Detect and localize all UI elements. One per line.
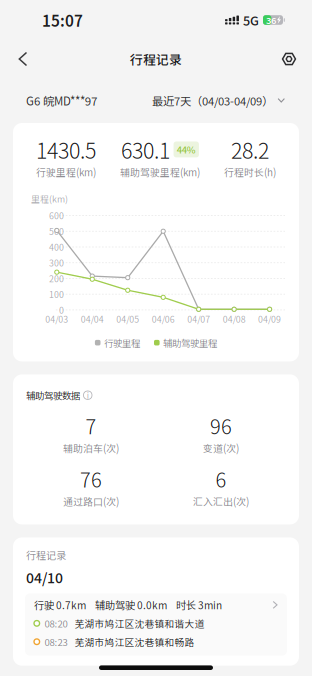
- staticText: 96: [210, 411, 232, 440]
- staticText: 0: [59, 303, 64, 316]
- staticText: G6 皖MD***97: [26, 92, 97, 109]
- staticText: 08:23: [45, 635, 68, 649]
- staticText: 04/07: [187, 312, 210, 325]
- staticText: 辅助驾驶里程(km): [120, 165, 200, 179]
- staticText: 行驶 0.7km: [34, 598, 86, 612]
- staticText: 7: [85, 411, 96, 440]
- staticText: 04/03: [45, 312, 68, 325]
- staticText: 08:20: [45, 616, 68, 630]
- staticText: 15:07: [42, 9, 83, 31]
- staticText: 500: [49, 225, 64, 238]
- button[interactable]: 设置: [270, 40, 308, 78]
- staticText: 芜湖市鸠江区沈巷镇和畅路: [75, 635, 195, 649]
- staticText: 04/10: [26, 567, 63, 587]
- staticText: 辅助驾驶数据: [26, 388, 80, 402]
- button[interactable]: 返回: [4, 40, 42, 78]
- staticText: 6: [215, 464, 226, 493]
- staticText: i: [87, 389, 89, 401]
- staticText: 芜湖市鸠江区沈巷镇和谐大道: [75, 616, 205, 630]
- staticText: 行程记录: [26, 547, 66, 562]
- staticText: 辅助泊车(次): [63, 441, 119, 455]
- staticText: 辅助驾驶 0.0km: [95, 598, 167, 612]
- staticText: 04/06: [152, 312, 175, 325]
- button[interactable]: G6 皖MD***97: [26, 87, 97, 114]
- staticText: 变道(次): [203, 441, 239, 455]
- staticText: 汇入汇出(次): [193, 494, 249, 508]
- staticText: 行驶里程(km): [36, 165, 96, 179]
- staticText: 1430.5: [36, 134, 96, 165]
- staticText: 100: [49, 288, 64, 300]
- staticText: 04/09: [258, 312, 281, 325]
- staticText: 600: [49, 209, 64, 222]
- staticText: 630.1: [121, 134, 170, 165]
- staticText: 300: [49, 256, 64, 269]
- staticText: 76: [80, 464, 102, 493]
- staticText: 28.2: [231, 134, 269, 165]
- staticText: 04/04: [81, 312, 104, 325]
- staticText: 行程时长(h): [224, 165, 276, 179]
- staticText: 36: [266, 13, 276, 27]
- button[interactable]: 行驶 0.7km: [25, 587, 287, 666]
- staticText: 44%: [177, 143, 196, 156]
- staticText: 里程(km): [31, 192, 68, 205]
- staticText: 5G: [243, 11, 259, 29]
- staticText: 04/08: [223, 312, 246, 325]
- staticText: 最近7天（04/03-04/09）: [152, 92, 273, 109]
- staticText: 400: [49, 241, 64, 253]
- staticText: 行程记录: [130, 50, 182, 68]
- staticText: 通过路口(次): [63, 494, 119, 508]
- staticText: 行驶里程: [104, 336, 140, 349]
- staticText: 时长 3min: [176, 598, 222, 612]
- staticText: 200: [49, 272, 64, 285]
- staticText: 04/05: [116, 312, 139, 325]
- staticText: 辅助驾驶里程: [163, 336, 217, 349]
- button[interactable]: 最近7天（04/03-04/09）: [152, 87, 285, 114]
